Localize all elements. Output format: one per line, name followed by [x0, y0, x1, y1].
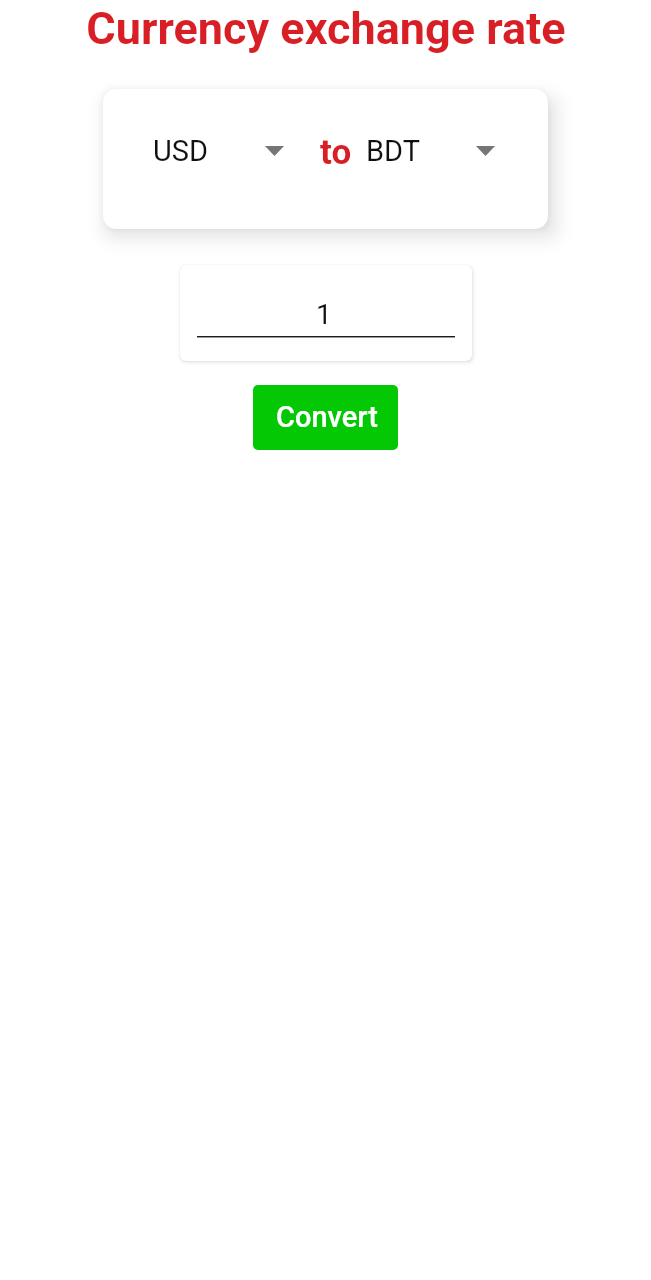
button[interactable]: Convert: [253, 385, 398, 450]
staticText: to: [320, 132, 352, 173]
button[interactable]: USD: [153, 134, 284, 168]
staticText: BDT: [366, 134, 421, 168]
staticText: Currency exchange rate: [86, 2, 566, 55]
other: Choose target currency: [476, 146, 495, 156]
other: Choose source currency: [265, 146, 284, 156]
button[interactable]: BDT: [366, 134, 495, 168]
staticText: USD: [153, 134, 209, 168]
staticText: 1: [316, 298, 332, 331]
staticText: Convert: [276, 400, 378, 434]
button[interactable]: 1: [180, 265, 472, 361]
